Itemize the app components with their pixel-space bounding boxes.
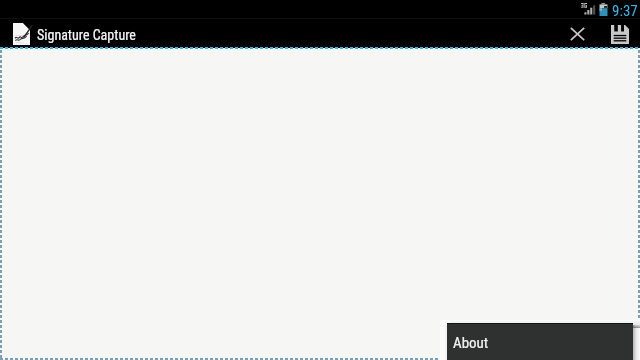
button[interactable]: Signature Capture (0, 19, 148, 48)
staticText: Signature Capture (37, 27, 136, 43)
button[interactable]: About (447, 323, 633, 360)
button[interactable]: Save signature (600, 20, 640, 48)
staticText: About (453, 334, 489, 352)
button[interactable]: Clear signature (557, 20, 600, 48)
staticText: 9:37 (612, 2, 638, 20)
